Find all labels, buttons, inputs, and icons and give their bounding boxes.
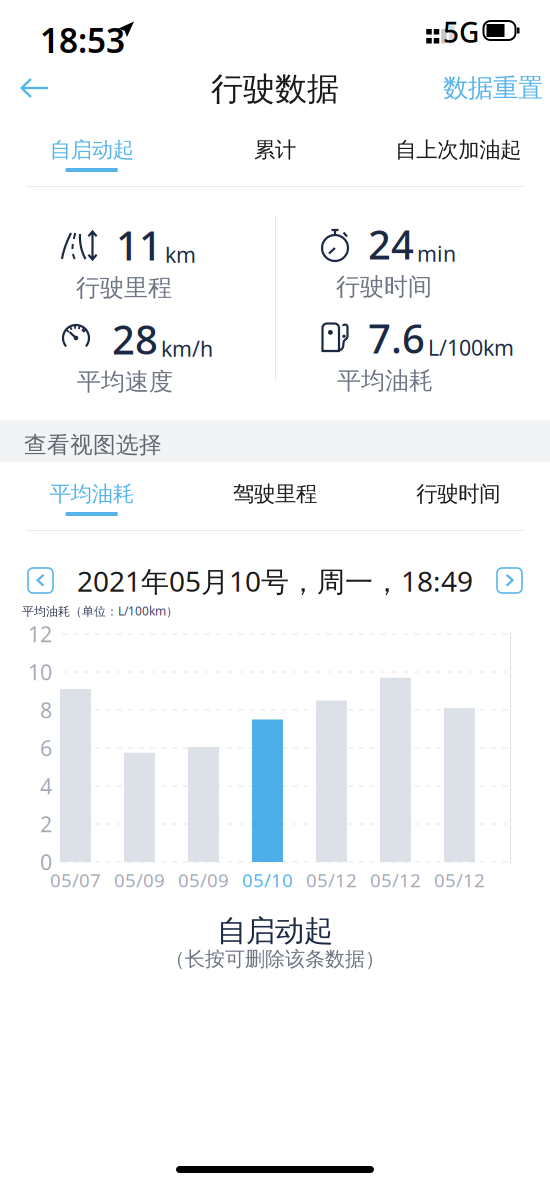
staticText: 驾驶里程 xyxy=(233,481,317,507)
staticText: 行驶数据 xyxy=(211,69,339,109)
button[interactable]: 自启动起 xyxy=(0,122,183,178)
staticText: 05/12 xyxy=(370,868,421,892)
button[interactable]: 累计 xyxy=(183,122,367,178)
staticText: 平均速度 xyxy=(77,367,173,396)
staticText: 5G xyxy=(443,13,479,51)
button[interactable]: Next day xyxy=(497,568,522,593)
staticText: 2 xyxy=(40,810,52,838)
staticText: km/h xyxy=(161,334,213,362)
staticText: 6 xyxy=(40,734,52,762)
staticText: 28 xyxy=(112,312,158,365)
staticText: 0 xyxy=(40,848,52,876)
staticText: 2021年05月10号，周一，18:49 xyxy=(77,562,473,600)
staticText: min xyxy=(417,239,456,267)
staticText: 12 xyxy=(28,620,52,648)
button[interactable]: 数据重置 xyxy=(436,66,550,110)
staticText: 平均油耗 xyxy=(337,366,433,395)
staticText: 7.6 xyxy=(368,311,425,364)
button[interactable]: Back xyxy=(10,64,64,112)
staticText: 行驶里程 xyxy=(76,273,172,302)
staticText: 累计 xyxy=(254,137,296,163)
staticText: 05/09 xyxy=(178,868,229,892)
staticText: 8 xyxy=(40,696,52,724)
staticText: 平均油耗（单位：L/100km） xyxy=(22,603,178,619)
button[interactable]: 驾驶里程 xyxy=(183,466,367,522)
staticText: 行驶时间 xyxy=(336,272,432,301)
button[interactable]: Previous day xyxy=(28,568,53,593)
button[interactable]: 自上次加油起 xyxy=(367,122,550,178)
staticText: 行驶时间 xyxy=(416,481,500,507)
staticText: L/100km xyxy=(428,333,514,361)
staticText: 18:53 xyxy=(40,18,125,62)
staticText: 自启动起 xyxy=(217,913,333,949)
staticText: 自上次加油起 xyxy=(395,137,521,163)
staticText: 4 xyxy=(40,772,52,800)
button[interactable]: 行驶时间 xyxy=(367,466,550,522)
staticText: 自启动起 xyxy=(50,137,134,163)
staticText: （长按可删除该条数据） xyxy=(165,947,385,971)
staticText: 05/07 xyxy=(50,868,101,892)
staticText: 11 xyxy=(116,218,162,271)
button[interactable]: 平均油耗 xyxy=(0,466,183,522)
staticText: 数据重置 xyxy=(443,72,543,103)
staticText: 05/09 xyxy=(114,868,165,892)
staticText: 24 xyxy=(368,217,414,270)
staticText: 05/12 xyxy=(434,868,485,892)
staticText: 05/12 xyxy=(306,868,357,892)
staticText: 查看视图选择 xyxy=(24,431,162,459)
staticText: 05/10 xyxy=(242,868,293,892)
staticText: 平均油耗 xyxy=(50,481,134,507)
staticText: 10 xyxy=(28,658,52,686)
staticText: km xyxy=(165,240,196,268)
